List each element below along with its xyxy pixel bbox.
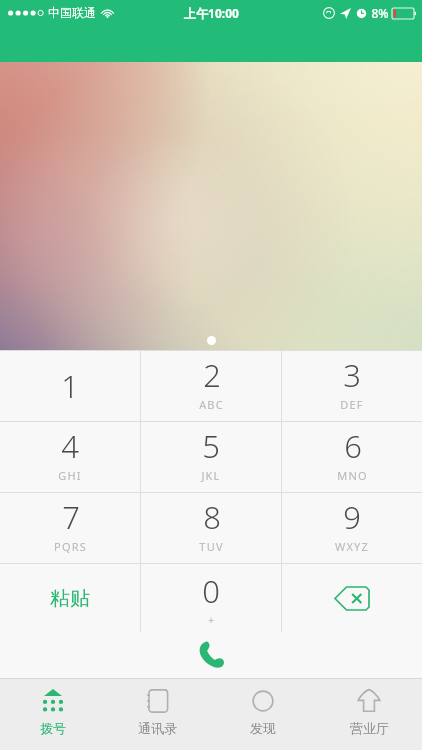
button[interactable]: 5 xyxy=(141,422,281,492)
button[interactable]: 营业厅 xyxy=(316,678,422,750)
staticText: WXYZ xyxy=(335,539,369,554)
staticText: TUV xyxy=(199,539,224,554)
staticText: 9 xyxy=(343,496,361,538)
staticText: ABC xyxy=(199,397,224,412)
staticText: PQRS xyxy=(54,539,87,554)
staticText: + xyxy=(208,613,214,627)
button[interactable]: 通讯录 xyxy=(105,678,210,750)
staticText: 上午10:00 xyxy=(184,5,239,21)
staticText: 8 xyxy=(203,496,221,538)
staticText: 发现 xyxy=(250,720,276,736)
staticText: 3 xyxy=(343,354,361,396)
staticText: MNO xyxy=(337,468,368,483)
staticText: GHI xyxy=(58,468,82,483)
button[interactable]: 7 xyxy=(0,493,140,563)
staticText: 粘贴 xyxy=(50,586,90,611)
button[interactable]: 1 xyxy=(0,351,140,421)
staticText: DEF xyxy=(340,397,364,412)
button[interactable]: 0 xyxy=(141,564,281,632)
staticText: 通讯录 xyxy=(138,720,177,736)
staticText: 营业厅 xyxy=(350,720,389,736)
staticText: 4 xyxy=(61,425,79,467)
staticText: 中国联通 xyxy=(48,5,96,20)
button[interactable]: 8 xyxy=(141,493,281,563)
staticText: 5 xyxy=(202,425,220,467)
button[interactable]: 粘贴 xyxy=(0,564,140,632)
button[interactable]: Backspace xyxy=(282,564,422,632)
button[interactable]: Call xyxy=(189,633,233,677)
button[interactable]: 4 xyxy=(0,422,140,492)
staticText: 2 xyxy=(203,354,221,396)
button[interactable]: 发现 xyxy=(210,678,316,750)
button[interactable]: 3 xyxy=(282,351,422,421)
staticText: 6 xyxy=(344,425,362,467)
staticText: 0 xyxy=(202,570,220,612)
staticText: 1 xyxy=(61,365,79,407)
staticText: 8% xyxy=(371,5,389,21)
staticText: 拨号 xyxy=(40,720,66,736)
button[interactable]: 6 xyxy=(282,422,422,492)
button[interactable]: 2 xyxy=(141,351,281,421)
button[interactable]: 拨号 xyxy=(0,678,105,750)
button[interactable]: 9 xyxy=(282,493,422,563)
staticText: 7 xyxy=(62,496,80,538)
staticText: JKL xyxy=(201,468,221,483)
